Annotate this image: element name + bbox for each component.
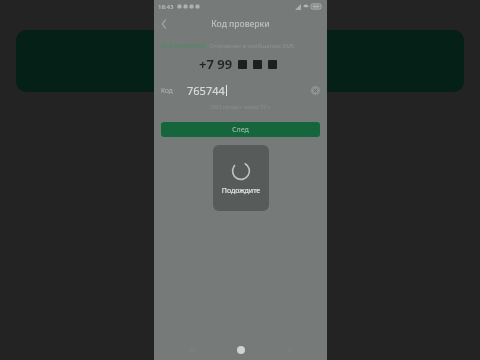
staticText: SMS придет через 55 с: [210, 103, 271, 110]
staticText: Код проверки: [161, 41, 206, 50]
staticText: След: [232, 125, 249, 135]
staticText: Код проверки: [211, 18, 270, 30]
button[interactable]: Очистить: [311, 86, 320, 95]
staticText: +7 99: [199, 55, 233, 73]
button[interactable]: Код: [161, 81, 320, 99]
staticText: 18:43: [158, 3, 174, 11]
staticText: 765744: [187, 83, 225, 98]
staticText: Подождите: [217, 186, 265, 196]
button[interactable]: Главный экран: [232, 341, 250, 359]
staticText: Код: [161, 86, 173, 95]
staticText: Отправлен в сообщении SMS: [209, 42, 295, 50]
button[interactable]: След: [161, 122, 320, 137]
button[interactable]: Назад: [154, 14, 174, 34]
